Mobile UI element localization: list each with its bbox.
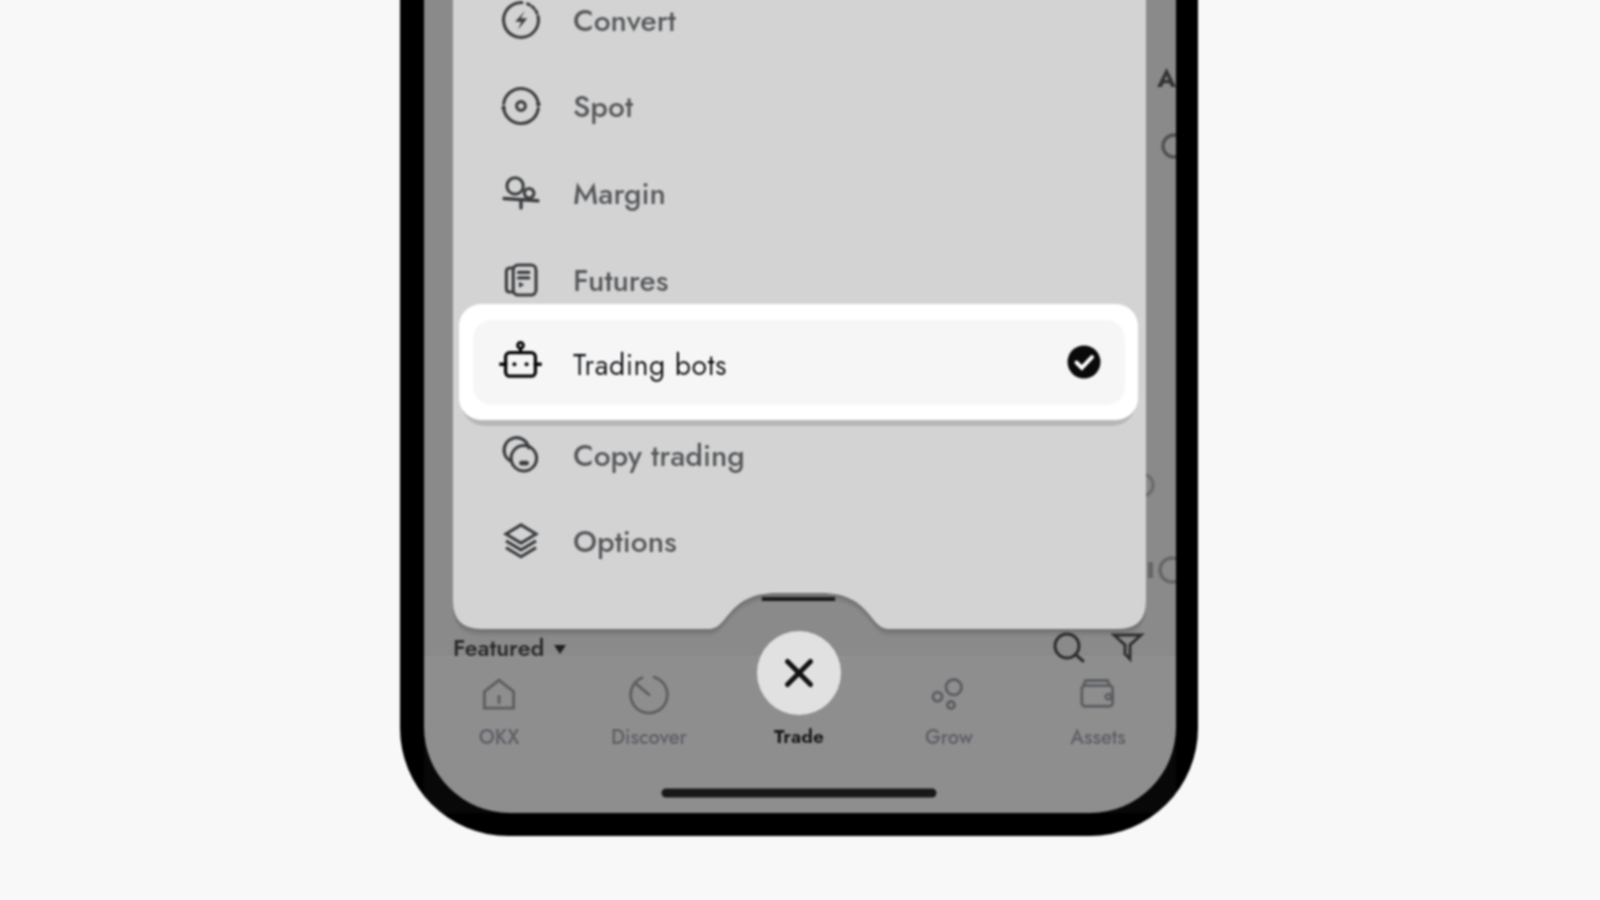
button[interactable]: Search xyxy=(1048,627,1090,669)
staticText: Margin xyxy=(573,172,666,215)
button[interactable]: Spot xyxy=(453,63,1146,149)
button[interactable]: Trade xyxy=(739,723,859,755)
staticText: Copy trading xyxy=(573,434,745,477)
button[interactable]: Grow xyxy=(889,668,1009,758)
staticText: Discover xyxy=(589,723,709,752)
staticText: Trade xyxy=(739,723,859,750)
staticText: OKX xyxy=(439,723,559,752)
staticText: Options xyxy=(573,520,677,563)
button[interactable]: Filter xyxy=(1109,627,1151,669)
button[interactable]: Convert xyxy=(453,0,1146,63)
button[interactable]: Copy trading xyxy=(453,412,1146,498)
button[interactable]: Margin xyxy=(453,150,1146,236)
staticText: Futures xyxy=(573,259,669,302)
staticText: Spot xyxy=(573,85,634,128)
button[interactable]: Close trade menu xyxy=(757,631,841,715)
button[interactable]: Futures xyxy=(453,237,1146,323)
button[interactable]: Options xyxy=(453,498,1146,584)
button[interactable]: Featured xyxy=(449,628,574,662)
staticText: Featured xyxy=(453,631,545,664)
staticText: Grow xyxy=(889,723,1009,752)
staticText: Convert xyxy=(573,0,676,42)
button[interactable]: Assets xyxy=(1038,668,1158,758)
button[interactable]: Trading bots xyxy=(459,304,1138,420)
staticText: Trading bots xyxy=(573,345,728,386)
staticText: A xyxy=(1157,59,1177,97)
staticText: Assets xyxy=(1038,723,1158,752)
button[interactable]: OKX xyxy=(439,668,559,758)
button[interactable]: Discover xyxy=(589,668,709,758)
